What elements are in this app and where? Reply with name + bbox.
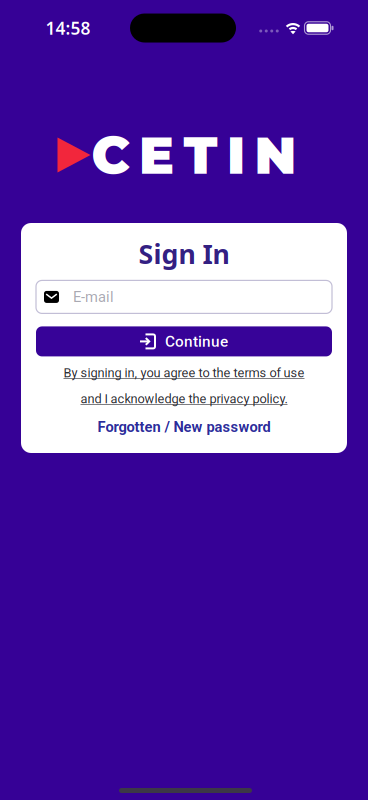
staticText: E xyxy=(139,123,174,187)
staticText: Sign In xyxy=(138,236,229,271)
staticText: By signing in, you agree to the terms of… xyxy=(63,365,304,380)
button[interactable]: E-mail xyxy=(36,280,332,313)
staticText: I xyxy=(227,123,245,187)
staticText: 14:58 xyxy=(45,16,90,39)
staticText: C xyxy=(91,123,129,187)
staticText: E-mail xyxy=(73,288,114,305)
button[interactable]: By signing in, you agree to the terms of… xyxy=(63,365,304,380)
staticText: T xyxy=(183,123,217,187)
staticText: Continue xyxy=(165,332,228,350)
staticText: N xyxy=(254,123,296,187)
button[interactable]: Continue xyxy=(36,326,332,356)
staticText: Forgotten / New password xyxy=(97,418,270,436)
button[interactable]: Forgotten / New password xyxy=(97,418,270,436)
staticText: and I acknowledge the privacy policy. xyxy=(80,391,287,406)
button[interactable]: and I acknowledge the privacy policy. xyxy=(80,391,287,406)
